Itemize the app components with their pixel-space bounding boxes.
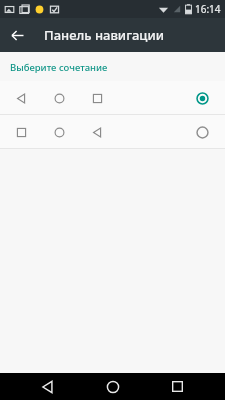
staticText: Выберите сочетание [10, 61, 108, 74]
staticText: Панель навигации [44, 26, 165, 44]
button[interactable]: Navigation combination [0, 115, 225, 148]
button[interactable]: Recent apps [160, 373, 194, 400]
button[interactable]: Back [0, 18, 34, 52]
staticText: 16:14 [195, 2, 221, 16]
button[interactable]: Selected navigation combination [0, 81, 225, 114]
button[interactable]: Back [31, 373, 65, 400]
button[interactable]: Home [96, 373, 130, 400]
